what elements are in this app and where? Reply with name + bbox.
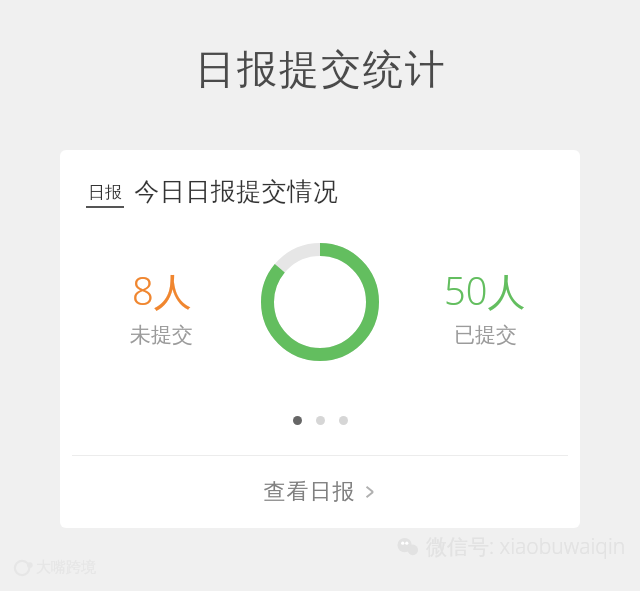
staticText: 查看日报 [263,478,355,506]
button[interactable]: 查看日报 [60,456,580,528]
staticText: 未提交 [130,322,193,348]
button[interactable] [316,416,325,425]
staticText: 8人 [132,264,192,316]
staticText: 已提交 [454,322,517,348]
staticText: 微信号: xiaobuwaiqin [426,532,626,561]
staticText: 日报提交统计 [194,44,446,94]
staticText: 大嘴跨境 [36,558,96,577]
button[interactable] [293,416,302,425]
staticText: 今日日报提交情况 [134,176,338,207]
button[interactable] [339,416,348,425]
staticText: 日报 [88,182,122,203]
staticText: 50人 [444,264,526,316]
